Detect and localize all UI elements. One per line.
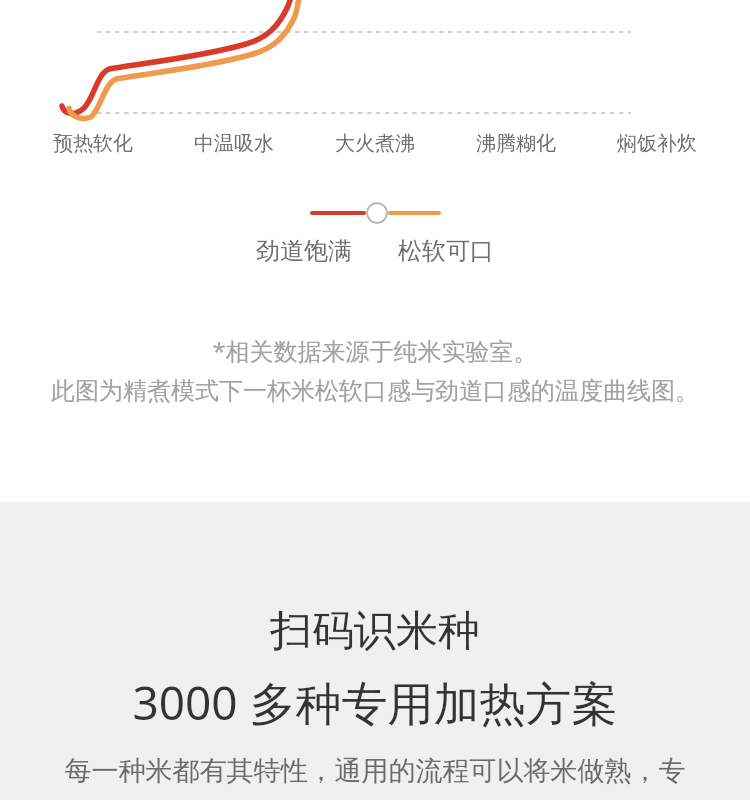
button[interactable]: Texture slider <box>310 202 441 224</box>
staticText: 焖饭补炊 <box>617 131 697 156</box>
staticText: 扫码识米种 <box>270 605 480 658</box>
staticText: *相关数据来源于纯米实验室。 <box>212 334 538 367</box>
staticText: 松软可口 <box>398 236 494 266</box>
staticText: 中温吸水 <box>194 131 274 156</box>
staticText: 大火煮沸 <box>335 131 415 156</box>
staticText: 预热软化 <box>53 131 133 156</box>
staticText: 此图为精煮模式下一杯米松软口感与劲道口感的温度曲线图。 <box>51 376 699 406</box>
staticText: 劲道饱满 <box>256 236 352 266</box>
staticText: 3000 多种专用加热方案 <box>132 671 618 734</box>
staticText: 每一种米都有其特性，通用的流程可以将米做熟，专用的流程才能将米做好。经过大量实验… <box>52 754 698 800</box>
staticText: 沸腾糊化 <box>476 131 556 156</box>
